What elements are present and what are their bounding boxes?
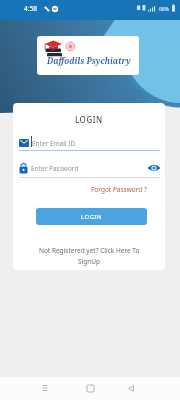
staticText: 68% — [159, 6, 169, 13]
button[interactable]: Enter Email ID — [19, 136, 159, 150]
staticText: LOGIN — [75, 114, 103, 125]
button[interactable]: LOGIN — [36, 208, 147, 225]
staticText: Enter Email ID — [32, 139, 76, 148]
button[interactable] — [147, 163, 161, 173]
button[interactable]: Enter Password — [19, 160, 159, 176]
button[interactable] — [34, 377, 56, 399]
staticText: Enter Password — [31, 164, 79, 173]
staticText: LOGIN — [81, 213, 103, 221]
button[interactable]: Forgot Password ? — [91, 185, 147, 194]
staticText: Not Registered yet? Click Here To — [39, 246, 140, 255]
staticText: 4:58 — [24, 4, 37, 13]
button[interactable] — [79, 377, 101, 399]
staticText: Daffodils Psychiatry — [47, 55, 131, 66]
button[interactable] — [120, 377, 142, 399]
staticText: SignUp — [78, 257, 101, 266]
button[interactable]: Not Registered yet? Click Here To — [13, 246, 165, 266]
staticText: Forgot Password ? — [91, 185, 147, 194]
